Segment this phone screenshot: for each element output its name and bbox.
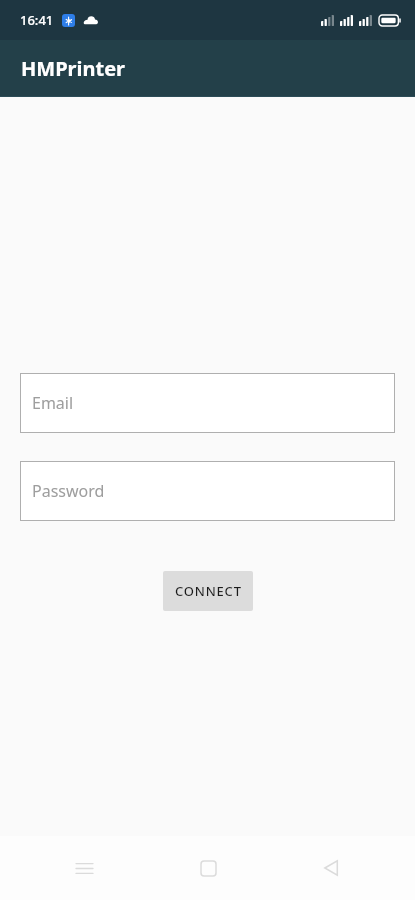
button[interactable]: CONNECT (163, 571, 253, 611)
button[interactable]: Recent apps (60, 844, 108, 892)
button[interactable]: Password (20, 461, 395, 521)
staticText: HMPrinter (21, 55, 126, 82)
staticText: 16:41 (20, 11, 54, 29)
staticText: Email (32, 392, 74, 414)
button[interactable]: Home (184, 844, 232, 892)
staticText: Password (32, 480, 105, 502)
button[interactable]: Email (20, 373, 395, 433)
staticText: CONNECT (175, 582, 242, 600)
button[interactable]: Back (307, 844, 355, 892)
